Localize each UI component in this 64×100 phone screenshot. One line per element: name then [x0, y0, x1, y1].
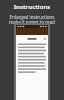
- staticText: Enlarged instructions make it easier to …: [3, 14, 61, 26]
- button[interactable]: App bar: [14, 23, 50, 100]
- staticText: Instructions: [0, 3, 64, 11]
